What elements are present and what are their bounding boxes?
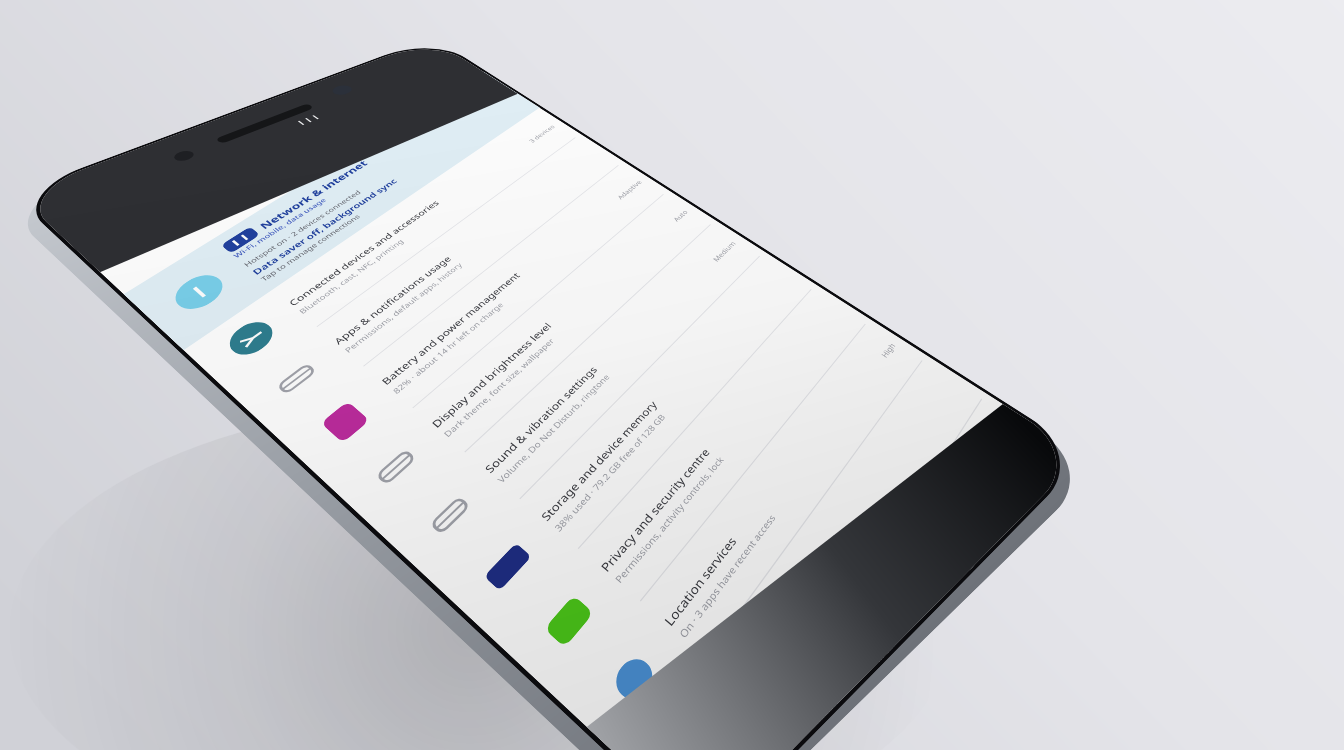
- button[interactable]: Storage and device memory: [3, 746, 417, 750]
- staticText: Wi-Fi, mobile, data usage: [87, 344, 183, 355]
- button[interactable]: Sound & vibration settings: [3, 679, 417, 746]
- button[interactable]: Display and brightness level: [3, 612, 417, 679]
- staticText: Hotspot on · 2 devices connected: [87, 361, 211, 372]
- staticText: Adaptive: [374, 573, 407, 584]
- button[interactable]: Network & internet: [3, 315, 417, 411]
- button[interactable]: Connected devices and accessories: [3, 411, 417, 478]
- staticText: Bluetooth, cast, NFC, printing: [87, 447, 198, 458]
- staticText: Network & internet: [123, 328, 241, 344]
- staticText: Connected devices and accessories: [87, 431, 252, 445]
- button[interactable]: Apps & notifications usage: [3, 478, 417, 545]
- staticText: Data saver off, background sync: [87, 374, 244, 388]
- staticText: ↻ 5G▃ 10:15: [336, 300, 389, 311]
- button[interactable]: Battery and power management: [3, 545, 417, 612]
- button[interactable]: Visibility: [346, 279, 365, 298]
